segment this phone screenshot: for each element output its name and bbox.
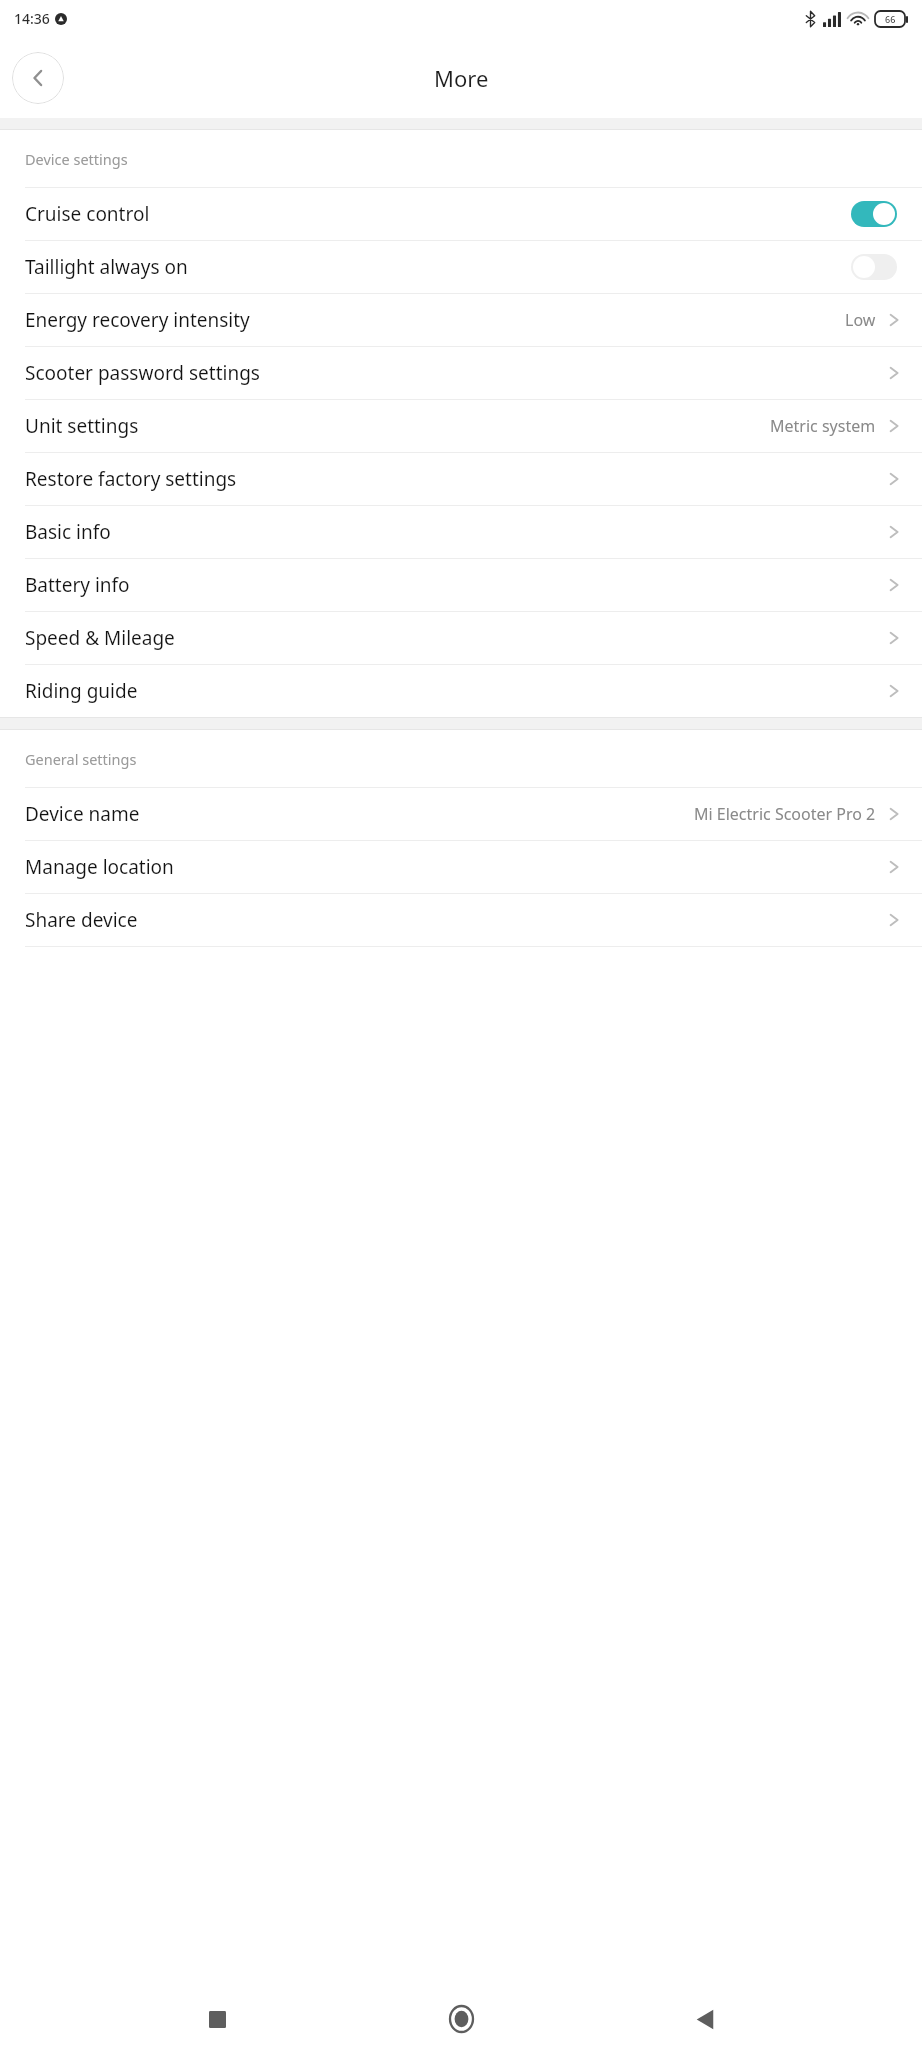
- staticText: More: [434, 63, 489, 93]
- button[interactable]: Energy recovery intensity: [0, 294, 922, 346]
- button[interactable]: Riding guide: [0, 665, 922, 717]
- staticText: Restore factory settings: [25, 466, 237, 492]
- staticText: Device settings: [25, 149, 128, 169]
- button[interactable]: Device name: [0, 788, 922, 840]
- button[interactable]: Home: [434, 1992, 488, 2046]
- staticText: Battery info: [25, 572, 130, 598]
- staticText: General settings: [25, 749, 137, 769]
- button[interactable]: Back: [678, 1992, 732, 2046]
- button[interactable]: Manage location: [0, 841, 922, 893]
- button[interactable]: Unit settings: [0, 400, 922, 452]
- staticText: Scooter password settings: [25, 360, 260, 386]
- button[interactable]: On: [851, 201, 897, 227]
- button[interactable]: Restore factory settings: [0, 453, 922, 505]
- staticText: 14:36: [14, 9, 50, 28]
- staticText: Low: [845, 309, 876, 331]
- staticText: Speed & Mileage: [25, 625, 175, 651]
- button[interactable]: Back: [12, 52, 64, 104]
- staticText: Mi Electric Scooter Pro 2: [694, 803, 876, 825]
- staticText: Unit settings: [25, 413, 139, 439]
- button[interactable]: Off: [851, 254, 897, 280]
- staticText: Riding guide: [25, 678, 138, 704]
- button[interactable]: Speed & Mileage: [0, 612, 922, 664]
- button[interactable]: Basic info: [0, 506, 922, 558]
- staticText: Energy recovery intensity: [25, 307, 250, 333]
- button[interactable]: Recent apps: [190, 1992, 244, 2046]
- button[interactable]: Battery info: [0, 559, 922, 611]
- staticText: Taillight always on: [25, 254, 188, 280]
- staticText: Share device: [25, 907, 138, 933]
- button[interactable]: Taillight always on: [0, 241, 922, 293]
- staticText: Manage location: [25, 854, 174, 880]
- button[interactable]: Cruise control: [0, 188, 922, 240]
- staticText: Device name: [25, 801, 140, 827]
- staticText: Metric system: [770, 415, 876, 437]
- staticText: Cruise control: [25, 201, 150, 227]
- staticText: 66: [885, 13, 896, 25]
- button[interactable]: Scooter password settings: [0, 347, 922, 399]
- button[interactable]: Share device: [0, 894, 922, 946]
- staticText: Basic info: [25, 519, 111, 545]
